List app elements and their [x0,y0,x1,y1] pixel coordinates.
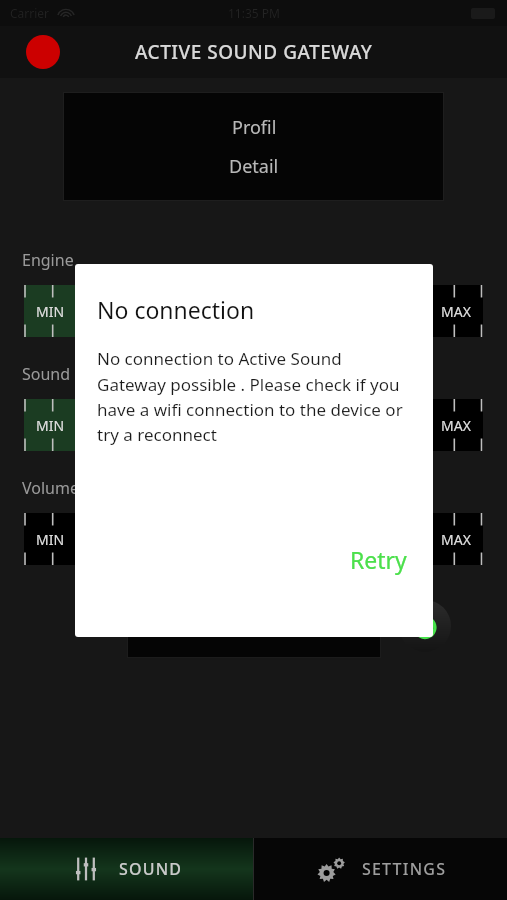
button[interactable]: MIN [24,399,483,451]
staticText: SAVE SETTINGS [186,614,323,639]
staticText: Profil [232,115,277,140]
staticText: SOUND [119,858,183,880]
staticText: Detail [229,154,279,179]
button[interactable]: SAVE SETTINGS [128,595,380,657]
button[interactable]: SOUND [0,838,253,900]
button[interactable]: Retry [344,538,413,581]
staticText: Retry [350,544,407,575]
staticText: MIN [36,530,65,549]
staticText: MIN [36,416,65,435]
staticText: Volume [22,477,79,499]
button[interactable]: Power [399,600,451,652]
button[interactable]: Record status [26,35,60,69]
staticText: MAX [441,302,471,321]
button[interactable]: Profil [64,93,443,200]
staticText: ACTIVE SOUND GATEWAY [135,39,373,65]
staticText: 11:35 PM [228,5,280,21]
staticText: Sound [22,363,71,385]
staticText: Engine [22,249,74,271]
staticText: No connection [97,294,255,325]
staticText: MIN [36,302,65,321]
staticText: MAX [441,530,471,549]
staticText: No connection to Active Sound Gateway po… [97,347,413,446]
staticText: MAX [441,416,471,435]
staticText: SETTINGS [362,858,447,880]
button[interactable]: SETTINGS [254,838,507,900]
button[interactable]: MIN [24,285,483,337]
staticText: Carrier [10,5,50,21]
button[interactable]: MIN [24,513,483,565]
